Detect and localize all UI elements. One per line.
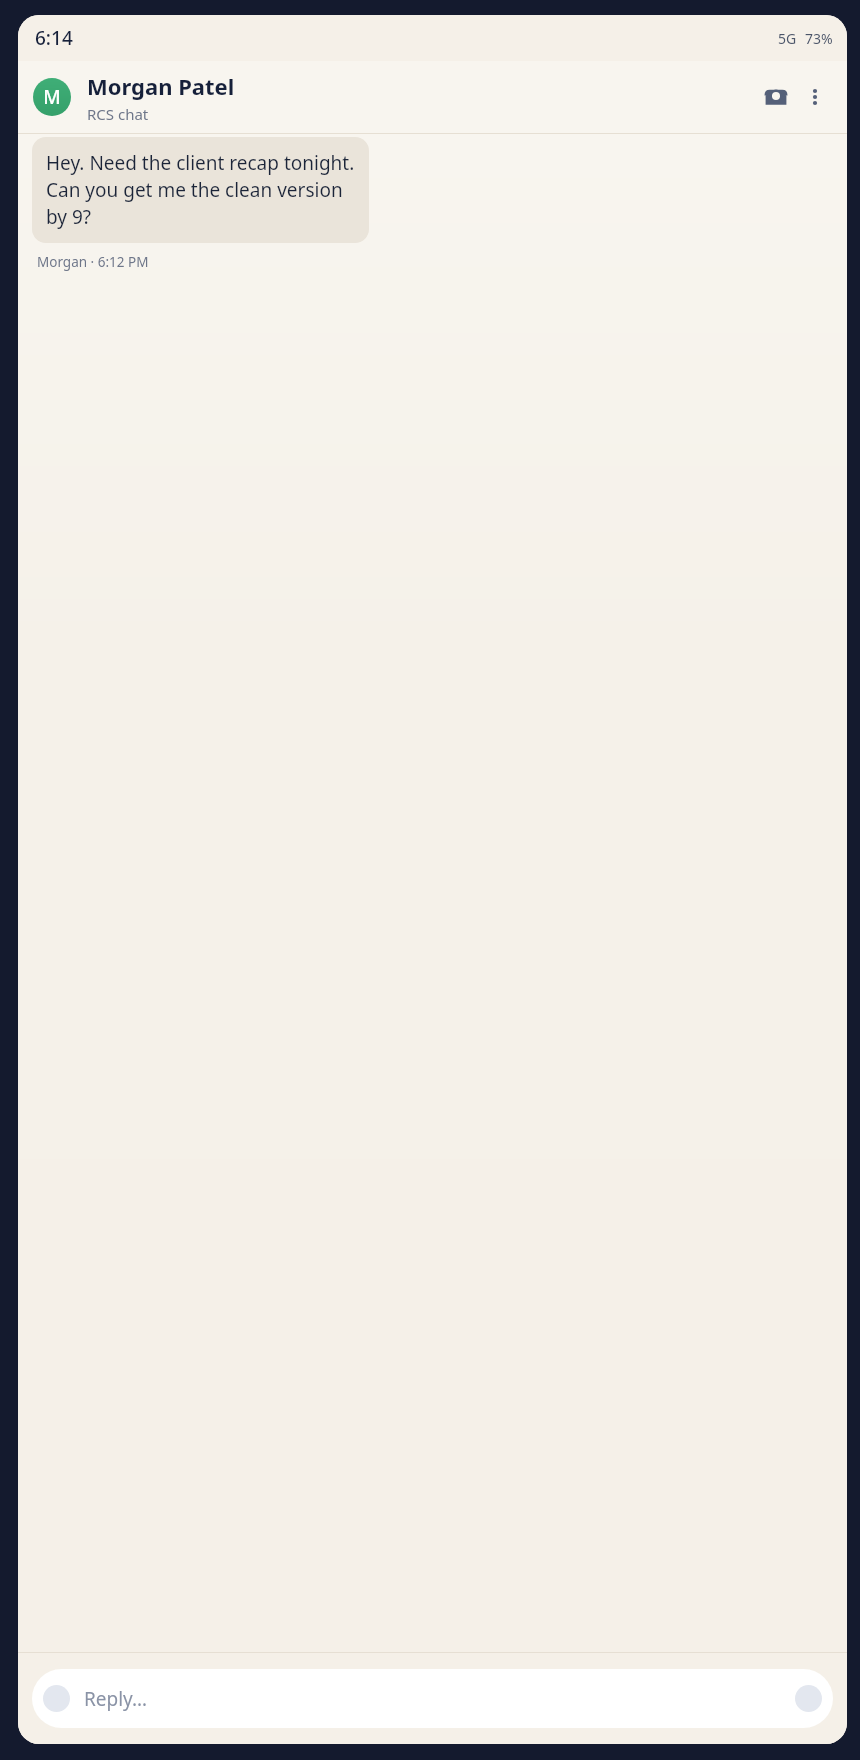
staticText: 5G [778,29,797,48]
staticText: RCS chat [87,104,149,124]
button[interactable]: Call [756,77,796,117]
button[interactable]: Hey. Need the client recap tonight. Can … [32,137,369,243]
button[interactable]: More options [798,80,832,114]
button[interactable]: Send [795,1685,822,1712]
button[interactable]: Add attachment [43,1685,70,1712]
staticText: M [43,84,61,110]
staticText: Hey. Need the client recap tonight. Can … [46,150,355,230]
button[interactable]: Add attachment [32,1669,833,1728]
staticText: Morgan Patel [87,71,235,101]
staticText: 6:14 [35,25,73,51]
button[interactable]: Contact avatar [33,78,71,116]
staticText: Morgan · 6:12 PM [37,253,149,271]
staticText: 73% [805,29,833,48]
staticText: Reply… [84,1686,795,1712]
